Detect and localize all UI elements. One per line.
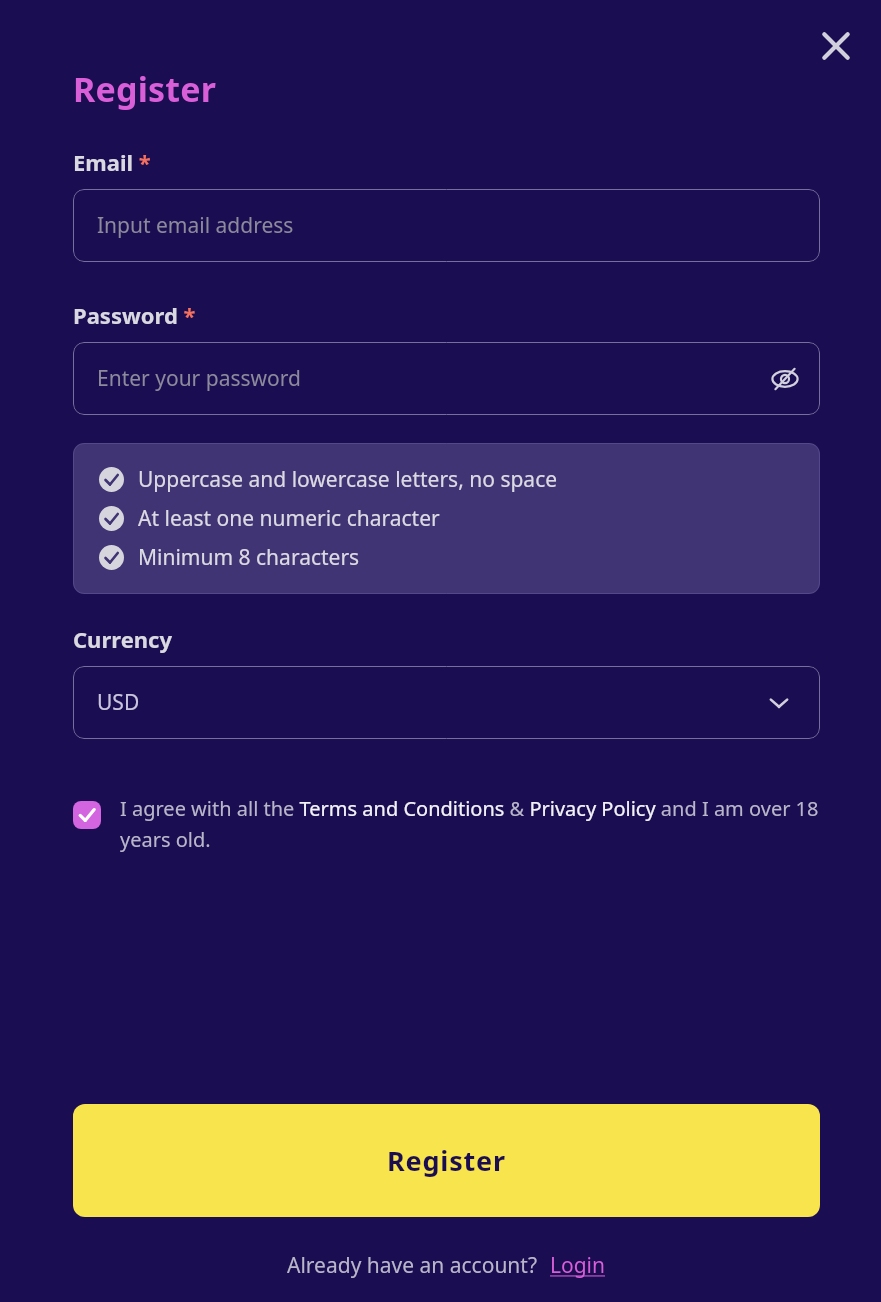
staticText: USD (97, 688, 140, 717)
staticText: Email * (73, 147, 151, 177)
button[interactable]: Close (808, 18, 864, 74)
button[interactable]: Input email address (73, 189, 820, 262)
staticText: Currency (73, 624, 173, 654)
button[interactable]: Register (73, 1104, 820, 1217)
button[interactable]: I agree with all the Terms and Condition… (73, 795, 820, 852)
staticText: Login (550, 1251, 606, 1280)
staticText: Already have an account? (287, 1251, 538, 1280)
staticText: At least one numeric character (138, 504, 440, 533)
button[interactable]: Enter your password (73, 342, 820, 415)
button[interactable]: USD (73, 666, 820, 739)
staticText: Input email address (97, 211, 294, 240)
staticText: Minimum 8 characters (138, 543, 360, 572)
staticText: Password * (73, 300, 196, 330)
button[interactable]: Show password (762, 356, 808, 402)
staticText: Register (73, 66, 217, 112)
staticText: Uppercase and lowercase letters, no spac… (138, 465, 558, 494)
staticText: Enter your password (97, 364, 301, 393)
staticText: I agree with all the Terms and Condition… (120, 795, 820, 852)
staticText: Register (387, 1142, 506, 1179)
button[interactable]: Login (550, 1251, 606, 1280)
